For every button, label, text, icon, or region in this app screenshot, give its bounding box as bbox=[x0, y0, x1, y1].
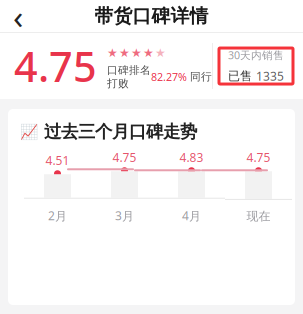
staticText: 4.51 bbox=[45, 152, 69, 168]
staticText: 同行 bbox=[187, 70, 212, 83]
staticText: 现在 bbox=[246, 209, 270, 224]
staticText: ★ bbox=[119, 46, 130, 60]
staticText: 30天内销售 bbox=[228, 48, 284, 62]
staticText: 口碑排名打败 bbox=[107, 64, 151, 90]
staticText: ★ bbox=[107, 46, 118, 60]
staticText: 1335 bbox=[256, 68, 284, 84]
staticText: 82.27% bbox=[151, 70, 187, 84]
staticText: 4月 bbox=[182, 208, 201, 224]
staticText: ‹ bbox=[13, 0, 23, 38]
staticText: 3月 bbox=[115, 208, 134, 224]
staticText: 带货口碑详情 bbox=[94, 4, 208, 27]
staticText: 4.75 bbox=[246, 149, 270, 165]
staticText: ★ bbox=[131, 46, 142, 60]
staticText: 📈 bbox=[20, 123, 38, 140]
staticText: 4.75 bbox=[14, 39, 97, 93]
staticText: 4.75 bbox=[112, 149, 136, 165]
staticText: 过去三个月口碑走势 bbox=[44, 121, 197, 142]
staticText: 已售 bbox=[228, 69, 252, 83]
staticText: ★ bbox=[155, 46, 166, 60]
staticText: ★ bbox=[143, 46, 154, 60]
button[interactable]: 30天内销售 bbox=[213, 48, 303, 84]
staticText: 2月 bbox=[48, 208, 67, 224]
staticText: 4.83 bbox=[179, 149, 203, 165]
button[interactable]: Back bbox=[0, 0, 36, 32]
